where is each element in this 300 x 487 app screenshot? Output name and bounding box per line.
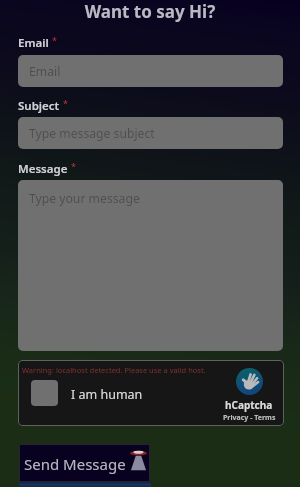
staticText: * <box>52 34 57 46</box>
staticText: Type your message <box>29 190 140 207</box>
staticText: I am human <box>71 386 143 403</box>
staticText: Send Message <box>24 454 126 474</box>
button[interactable]: Email <box>18 55 283 87</box>
staticText: Privacy - Terms <box>223 413 276 423</box>
button[interactable]: Send Message <box>19 444 150 482</box>
staticText: hCaptcha <box>225 398 273 412</box>
staticText: Type message subject <box>29 125 155 142</box>
staticText: Message <box>18 161 68 177</box>
staticText: * <box>71 160 76 172</box>
button[interactable]: Type message subject <box>18 117 283 149</box>
staticText: Want to say Hi? <box>0 0 300 23</box>
staticText: Email <box>29 63 61 80</box>
staticText: Warning: localhost detected. Please use … <box>22 365 206 375</box>
staticText: Email <box>18 35 49 51</box>
staticText: Subject <box>18 98 60 114</box>
button[interactable]: I am human checkbox <box>31 380 58 406</box>
staticText: * <box>63 97 68 109</box>
